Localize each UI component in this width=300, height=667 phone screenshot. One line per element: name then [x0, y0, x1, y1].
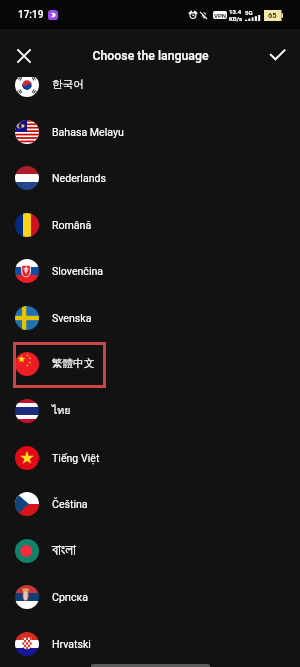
staticText: Slovenčina [52, 265, 104, 277]
staticText: Tiếng Việt [52, 452, 100, 464]
staticText: ไทย [52, 402, 71, 419]
button[interactable]: 繁體中文 [0, 340, 300, 387]
staticText: 13.4 [229, 8, 242, 15]
staticText: বাংলা [52, 543, 76, 558]
button[interactable]: Svenska [0, 294, 300, 341]
button[interactable]: Confirm [263, 40, 291, 68]
staticText: Nederlands [52, 172, 106, 184]
button[interactable]: Tiếng Việt [0, 434, 300, 481]
staticText: 繁體中文 [52, 357, 95, 370]
button[interactable]: Српска [0, 573, 300, 620]
button[interactable]: বাংলা [0, 527, 300, 574]
staticText: Bahasa Melayu [52, 126, 124, 138]
button[interactable]: Hrvatski [0, 620, 300, 667]
staticText: 5G [245, 9, 253, 16]
button[interactable]: Close [10, 42, 38, 70]
staticText: VPN [214, 12, 227, 19]
button[interactable]: Română [0, 201, 300, 248]
button[interactable]: 한국어 [0, 77, 300, 108]
staticText: Română [52, 219, 92, 231]
staticText: 한국어 [52, 78, 84, 91]
button[interactable]: Nederlands [0, 154, 300, 201]
staticText: 17:19 [18, 9, 44, 21]
staticText: Hrvatski [52, 638, 91, 650]
staticText: Svenska [52, 312, 92, 324]
button[interactable]: Čeština [0, 480, 300, 527]
staticText: Čeština [52, 498, 88, 510]
staticText: 65 [268, 11, 277, 20]
button[interactable]: ไทย [0, 387, 300, 434]
button[interactable]: Slovenčina [0, 247, 300, 294]
staticText: Српска [52, 591, 88, 603]
button[interactable]: Bahasa Melayu [0, 108, 300, 155]
staticText: KB/s [229, 15, 242, 22]
staticText: Choose the language [92, 49, 209, 63]
